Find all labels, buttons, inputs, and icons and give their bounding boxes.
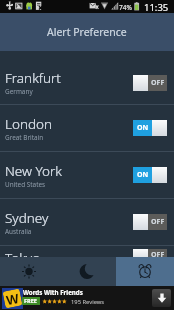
button[interactable]: Alert off (133, 249, 167, 257)
button[interactable]: Alert off (133, 214, 167, 230)
button[interactable]: Alert off (133, 75, 167, 91)
staticText: Frankfurt (5, 69, 61, 87)
staticText: FREE (24, 297, 38, 305)
staticText: Alert Preference (47, 25, 127, 39)
staticText: ON (137, 170, 149, 180)
staticText: Australia (5, 227, 32, 236)
button[interactable]: Night alerts (58, 257, 116, 286)
button[interactable]: Sunrise alerts (0, 257, 58, 286)
button[interactable]: W (0, 286, 174, 310)
staticText: OFF (151, 250, 165, 257)
staticText: New York (5, 162, 62, 180)
staticText: ON (137, 123, 149, 133)
button[interactable]: New York (0, 152, 174, 198)
staticText: OFF (151, 78, 165, 88)
button[interactable]: Sydney (0, 199, 174, 245)
staticText: Great Britain (5, 133, 44, 142)
button[interactable]: Install app (152, 289, 171, 307)
button[interactable]: London (0, 105, 174, 151)
button[interactable]: Alert on (133, 120, 167, 136)
button[interactable]: Alarm alerts (116, 257, 174, 286)
staticText: 74% (119, 3, 132, 12)
staticText: 195 Reviews (71, 298, 105, 306)
button[interactable]: Frankfurt (0, 56, 174, 109)
staticText: United States (5, 180, 46, 189)
staticText: Words With Friends (23, 288, 83, 296)
staticText: OFF (151, 217, 165, 227)
button[interactable]: Alert on (133, 167, 167, 183)
staticText: Sydney (5, 209, 49, 227)
staticText: 11:35 (144, 1, 169, 14)
staticText: W (4, 289, 20, 308)
staticText: London (5, 115, 53, 133)
button[interactable]: Tokyo (0, 249, 174, 257)
staticText: Tokyo (5, 249, 41, 257)
staticText: Germany (5, 87, 33, 96)
